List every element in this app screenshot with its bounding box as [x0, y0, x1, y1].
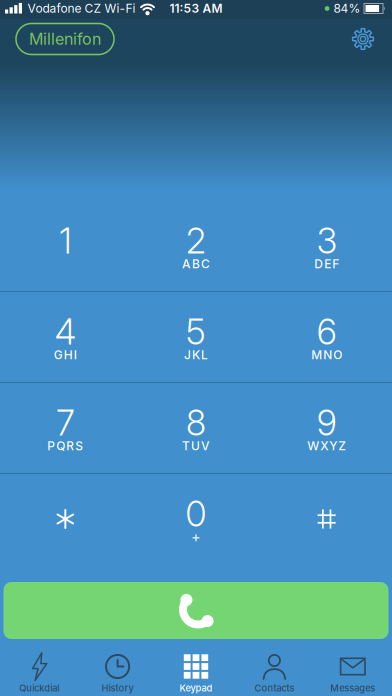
button[interactable]: 1 [0, 201, 131, 291]
staticText: 5 [186, 312, 206, 352]
button[interactable]: 0 [131, 474, 261, 564]
staticText: D E F [314, 257, 339, 271]
staticText: Keypad [179, 682, 212, 693]
staticText: 7 [56, 403, 74, 443]
button[interactable]: Messages [314, 651, 392, 693]
staticText: 1 [59, 221, 71, 261]
staticText: 3 [317, 221, 337, 261]
staticText: P Q R S [47, 439, 83, 453]
staticText: 0 [185, 494, 206, 534]
staticText: 2 [186, 221, 206, 261]
button[interactable]: 3 [261, 201, 392, 291]
button[interactable]: Keypad [157, 651, 235, 693]
button[interactable]: 9 [261, 383, 392, 473]
staticText: T U V [182, 439, 210, 453]
button[interactable]: Quickdial [0, 651, 78, 693]
button[interactable]: 6 [261, 292, 392, 382]
staticText: Messages [330, 682, 375, 693]
button[interactable]: 4 [0, 292, 131, 382]
staticText: 9 [317, 403, 337, 443]
staticText: 4 [55, 312, 76, 352]
button[interactable]: Settings [346, 22, 380, 56]
staticText: 11:53 AM [169, 1, 222, 16]
button[interactable]: Contacts [235, 651, 314, 693]
staticText: 6 [317, 312, 337, 352]
button[interactable]: 8 [131, 383, 261, 473]
staticText: A B C [182, 257, 210, 271]
button[interactable]: # [261, 474, 392, 564]
button[interactable]: History [78, 651, 157, 693]
staticText: History [102, 682, 134, 693]
staticText: Millenifon [29, 30, 101, 48]
staticText: M N O [311, 348, 342, 362]
button[interactable]: Millenifon [16, 23, 114, 54]
button[interactable]: 2 [131, 201, 261, 291]
staticText: W X Y Z [307, 439, 346, 453]
button[interactable]: * [0, 474, 131, 564]
staticText: Quickdial [19, 682, 59, 693]
staticText: Contacts [254, 682, 294, 693]
button[interactable]: 5 [131, 292, 261, 382]
button[interactable]: 7 [0, 383, 131, 473]
staticText: G H I [54, 348, 77, 362]
button[interactable]: Call [0, 582, 392, 639]
staticText: Vodafone CZ Wi-Fi [27, 1, 135, 16]
staticText: 8 [186, 403, 206, 443]
staticText: J K L [184, 348, 208, 362]
staticText: + [191, 528, 201, 546]
staticText: 84% [333, 1, 360, 16]
